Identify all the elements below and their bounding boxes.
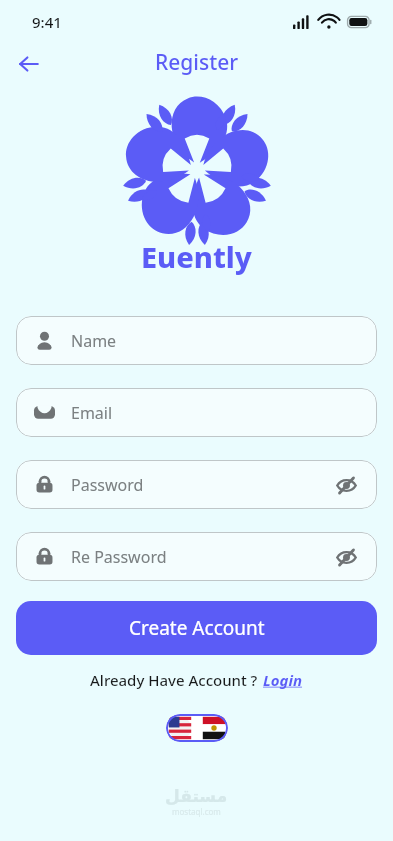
staticText: مستقل xyxy=(165,786,228,806)
staticText: Re Password xyxy=(71,546,167,568)
staticText: Euently xyxy=(141,237,252,276)
button[interactable]: Name xyxy=(16,316,377,365)
staticText: Name xyxy=(71,330,117,352)
button[interactable]: Back xyxy=(10,45,48,83)
button[interactable]: Re Password xyxy=(16,532,377,581)
staticText: 9:41 xyxy=(32,12,62,32)
button[interactable]: Change language xyxy=(166,714,228,742)
button[interactable]: Show password xyxy=(333,472,359,498)
staticText: mostaql.com xyxy=(172,806,221,817)
button[interactable]: Create Account xyxy=(16,601,377,655)
staticText: Password xyxy=(71,474,144,496)
staticText: Already Have Account ? xyxy=(90,670,258,690)
button[interactable]: Password xyxy=(16,460,377,509)
button[interactable]: Show password xyxy=(333,544,359,570)
button[interactable]: Email xyxy=(16,388,377,437)
staticText: Register xyxy=(155,48,239,77)
button[interactable]: Login xyxy=(263,670,303,690)
staticText: Email xyxy=(71,402,113,424)
staticText: Create Account xyxy=(129,615,265,641)
staticText: Login xyxy=(263,670,303,690)
